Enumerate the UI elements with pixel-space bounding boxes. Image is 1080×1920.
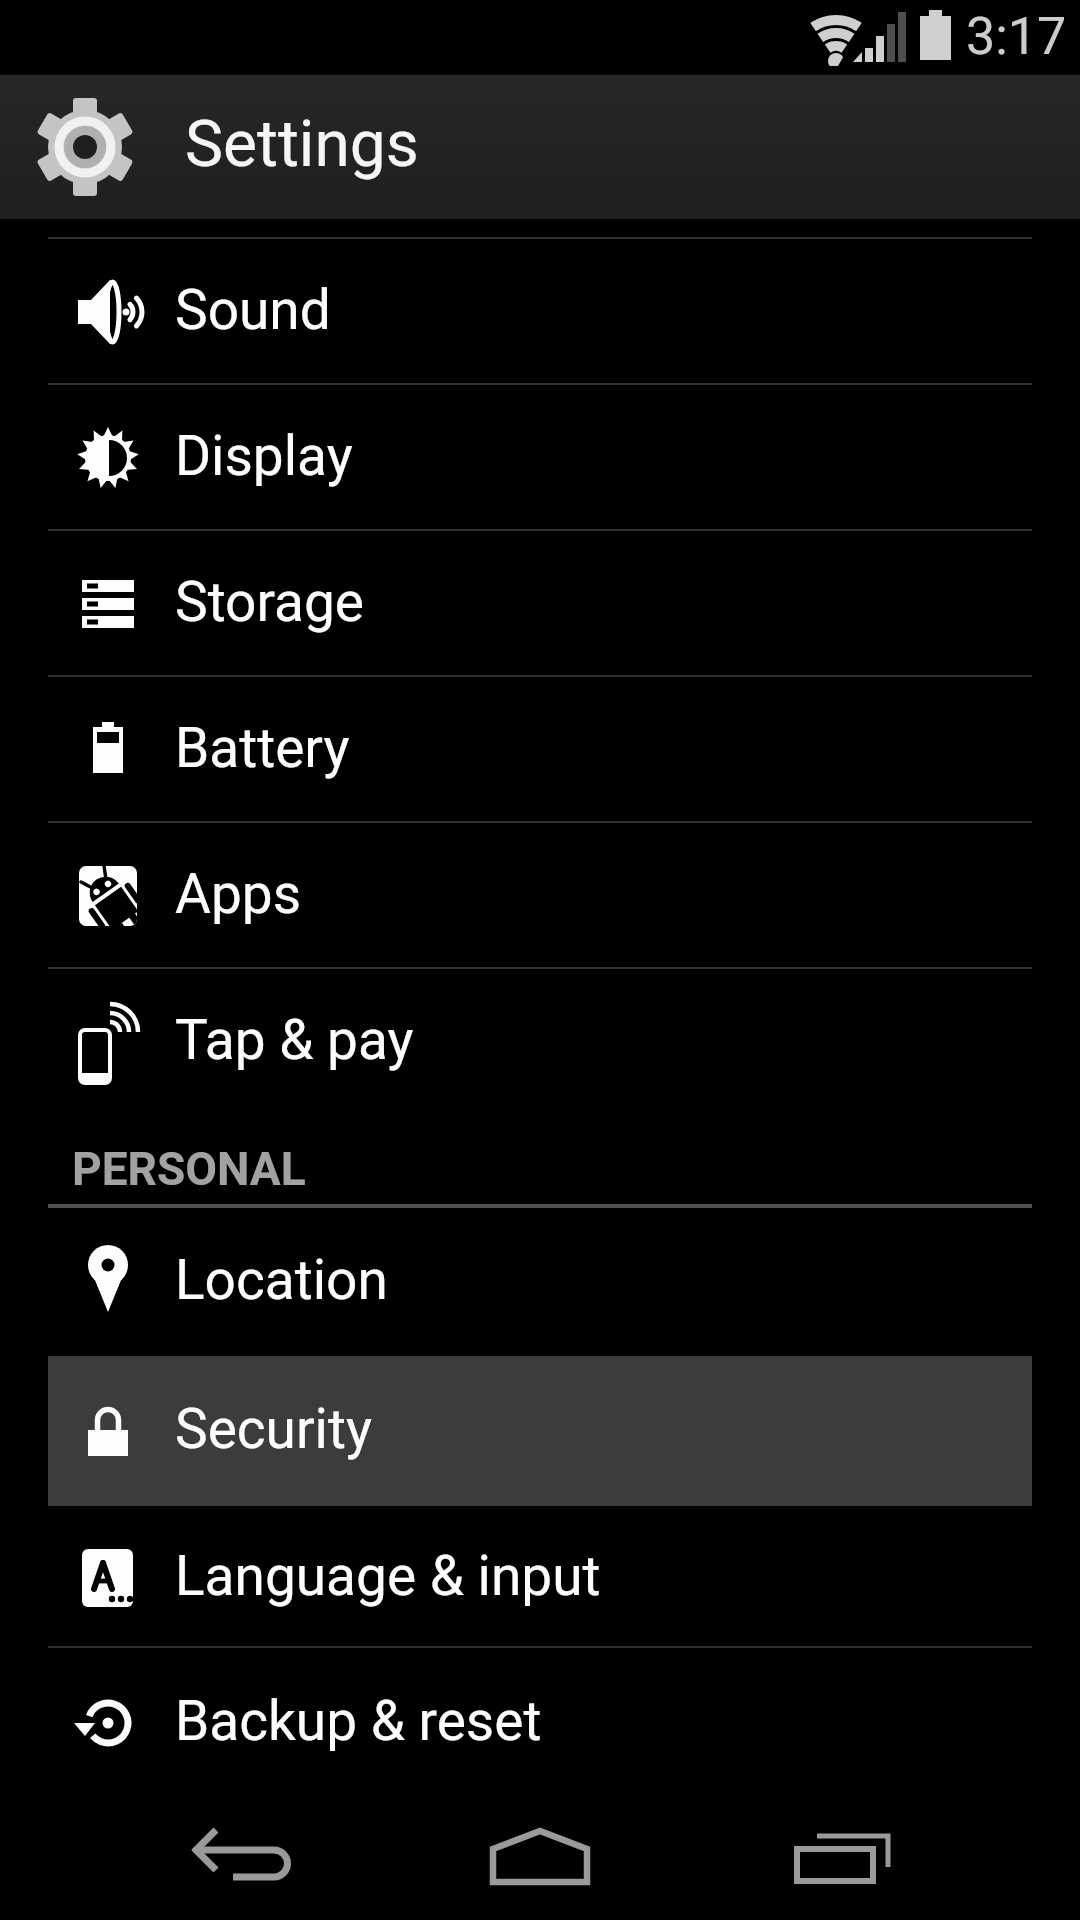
button[interactable]: Sound [0, 239, 1080, 385]
button[interactable]: Security [0, 1356, 1080, 1506]
button[interactable]: Location [0, 1208, 1080, 1356]
button[interactable]: Language & input [0, 1506, 1080, 1650]
staticText: Apps [175, 862, 302, 926]
button[interactable] [453, 1812, 627, 1904]
button[interactable]: Settings [0, 75, 1080, 219]
button[interactable]: Apps [0, 823, 1080, 969]
staticText: 3:17 [966, 6, 1067, 67]
button[interactable]: Battery [0, 677, 1080, 823]
staticText: Tap & pay [175, 1008, 414, 1072]
staticText: Battery [175, 716, 350, 780]
button[interactable]: Tap & pay [0, 969, 1080, 1115]
staticText: PERSONAL [72, 1142, 306, 1196]
button[interactable]: Backup & reset [0, 1650, 1080, 1796]
staticText: Display [175, 424, 353, 488]
staticText: Security [175, 1397, 372, 1461]
staticText: Backup & reset [175, 1689, 542, 1753]
staticText: Settings [185, 107, 419, 182]
staticText: Storage [175, 570, 365, 634]
staticText: Location [175, 1248, 388, 1312]
staticText: Language & input [175, 1544, 601, 1608]
button[interactable]: Storage [0, 531, 1080, 677]
staticText: Sound [175, 278, 331, 342]
button[interactable] [150, 1812, 324, 1904]
button[interactable]: Display [0, 385, 1080, 531]
button[interactable] [756, 1812, 930, 1904]
